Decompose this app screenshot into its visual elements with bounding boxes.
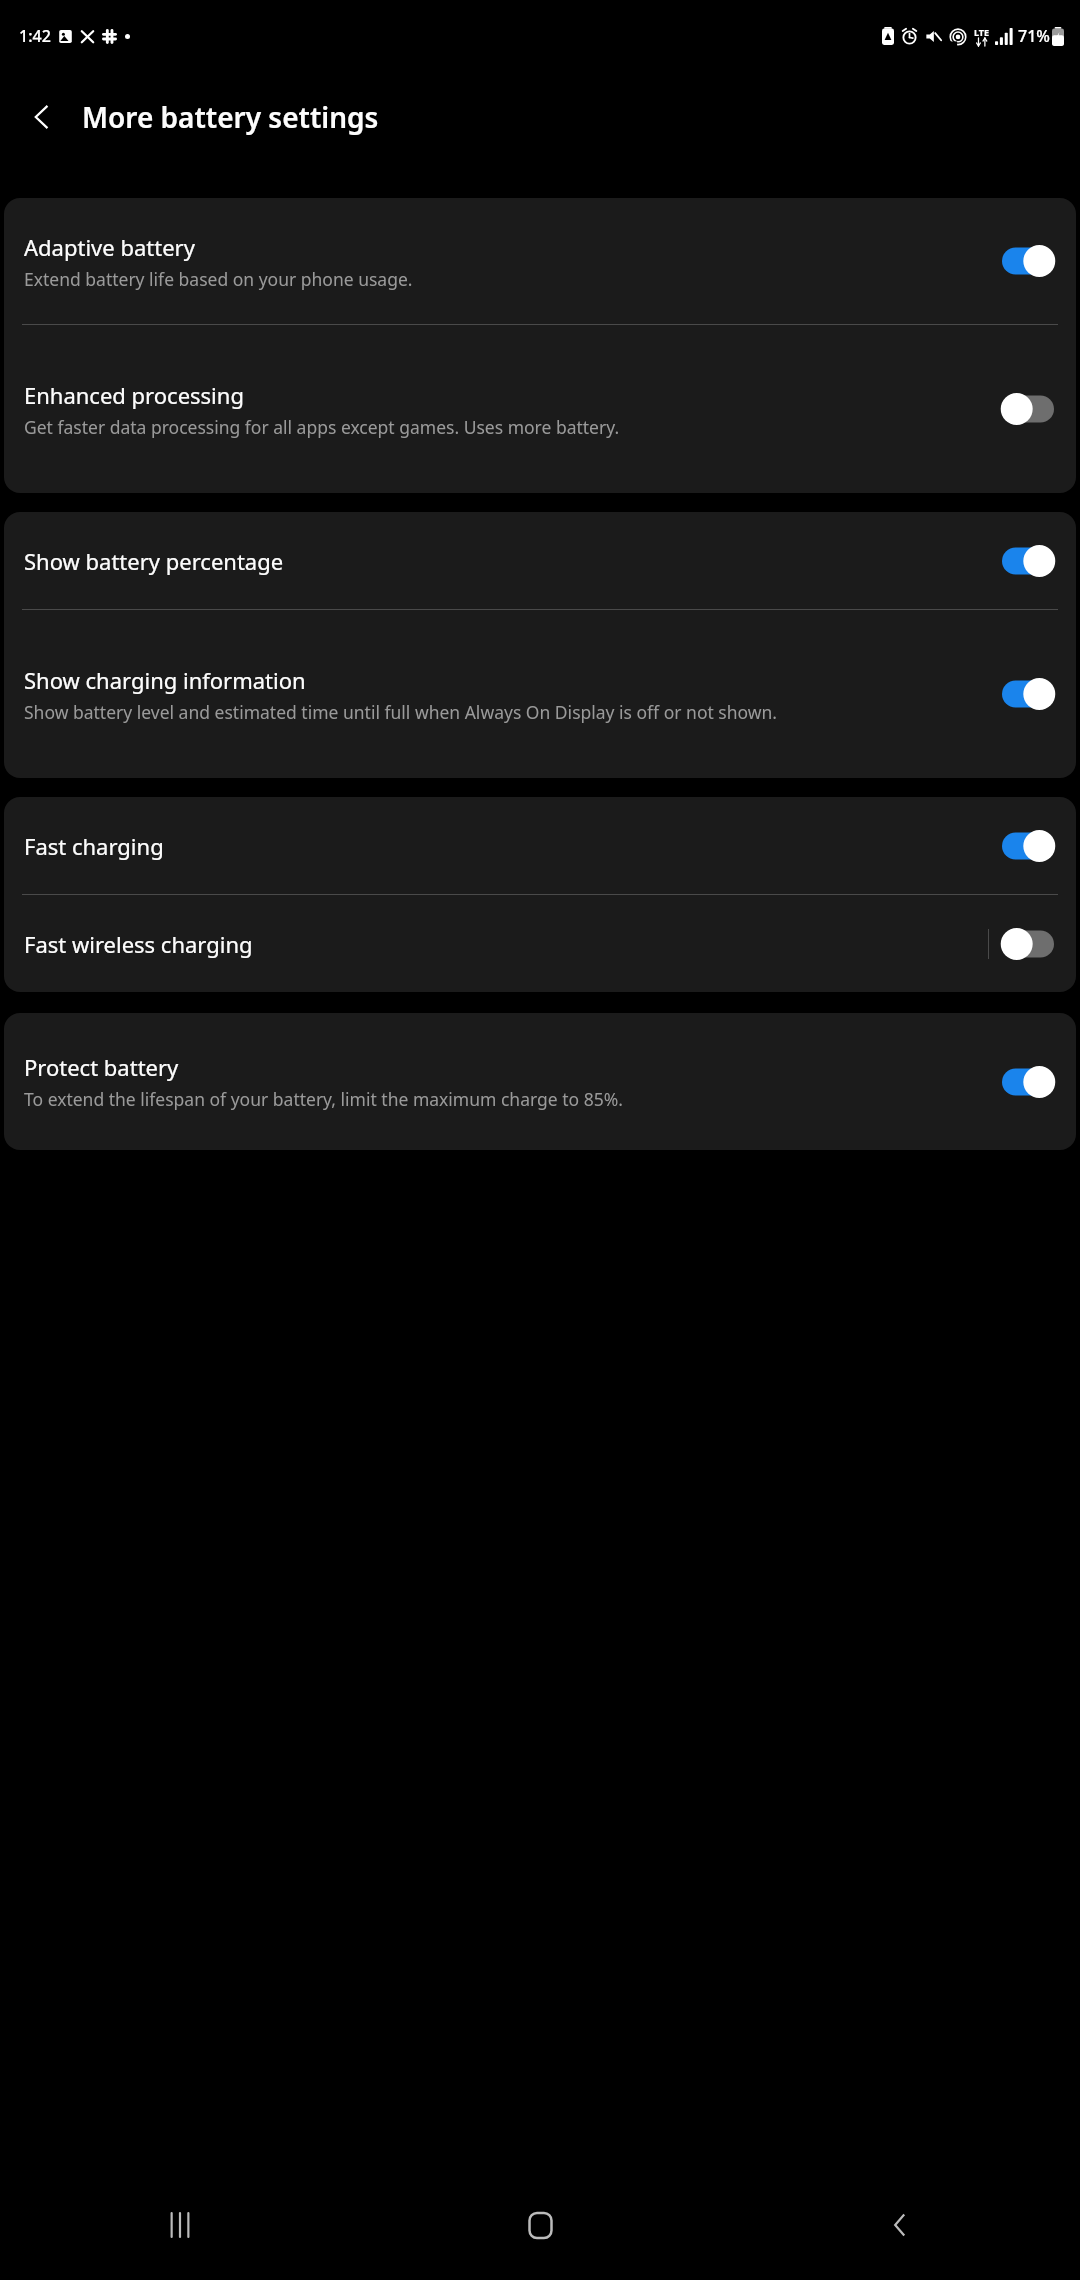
button[interactable]: Off [1002,927,1054,961]
staticText: Extend battery life based on your phone … [24,267,413,291]
button[interactable]: On [1002,829,1054,863]
button[interactable]: Off [1002,392,1054,426]
button[interactable]: Recents [0,2170,360,2280]
staticText: Show battery level and estimated time un… [24,700,778,724]
button[interactable]: Back [14,89,70,145]
button[interactable]: Fast charging [4,797,1076,894]
staticText: LTE [974,26,990,38]
button[interactable]: On [1002,544,1054,578]
staticText: Show charging information [24,665,306,695]
button[interactable]: Show charging information [4,610,1076,778]
staticText: More battery settings [82,98,379,136]
button[interactable]: Protect battery [4,1013,1076,1150]
staticText: Get faster data processing for all apps … [24,415,620,439]
staticText: To extend the lifespan of your battery, … [24,1087,623,1111]
staticText: 71% [1018,25,1050,47]
button[interactable]: Home [360,2170,720,2280]
staticText: Protect battery [24,1052,179,1082]
staticText: Adaptive battery [24,232,195,262]
button[interactable]: Show battery percentage [4,512,1076,609]
staticText: Enhanced processing [24,380,244,410]
button[interactable]: On [1002,1065,1054,1099]
button[interactable]: Back [720,2170,1080,2280]
button[interactable]: Enhanced processing [4,325,1076,493]
staticText: 1:42 [19,25,51,47]
staticText: Fast wireless charging [24,929,253,959]
button[interactable]: On [1002,244,1054,278]
button[interactable]: Adaptive battery [4,198,1076,324]
staticText: Show battery percentage [24,546,284,576]
button[interactable]: On [1002,677,1054,711]
staticText: Fast charging [24,831,164,861]
button[interactable]: Fast wireless charging [4,895,1076,992]
